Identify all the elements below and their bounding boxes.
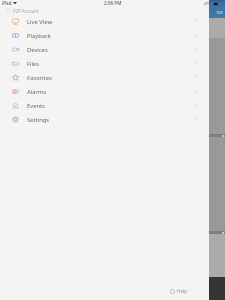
button[interactable]: Settings [0, 112, 225, 126]
staticText: 47% [204, 1, 212, 6]
staticText: Help [177, 288, 188, 294]
button[interactable]: Devices [0, 42, 225, 56]
staticText: Playback [27, 32, 51, 40]
staticText: Alarms [27, 88, 47, 96]
staticText: Devices [27, 46, 48, 54]
button[interactable]: Events [0, 98, 225, 112]
button[interactable]: Playback [0, 28, 225, 42]
button[interactable]: Camera [209, 0, 225, 18]
staticText: iPad [2, 0, 12, 6]
button[interactable]: Files [0, 56, 225, 70]
staticText: Live View [27, 18, 52, 26]
button[interactable]: Live View [0, 14, 225, 28]
staticText: Favorites [27, 74, 52, 82]
staticText: Settings [27, 116, 50, 124]
staticText: Files [27, 60, 40, 68]
staticText: P2P Account [13, 8, 39, 14]
button[interactable]: Alarms [0, 84, 225, 98]
button[interactable]: Help [169, 287, 189, 295]
button[interactable]: Favorites [0, 70, 225, 84]
staticText: 2:06 PM [104, 0, 122, 6]
staticText: Events [27, 102, 45, 110]
